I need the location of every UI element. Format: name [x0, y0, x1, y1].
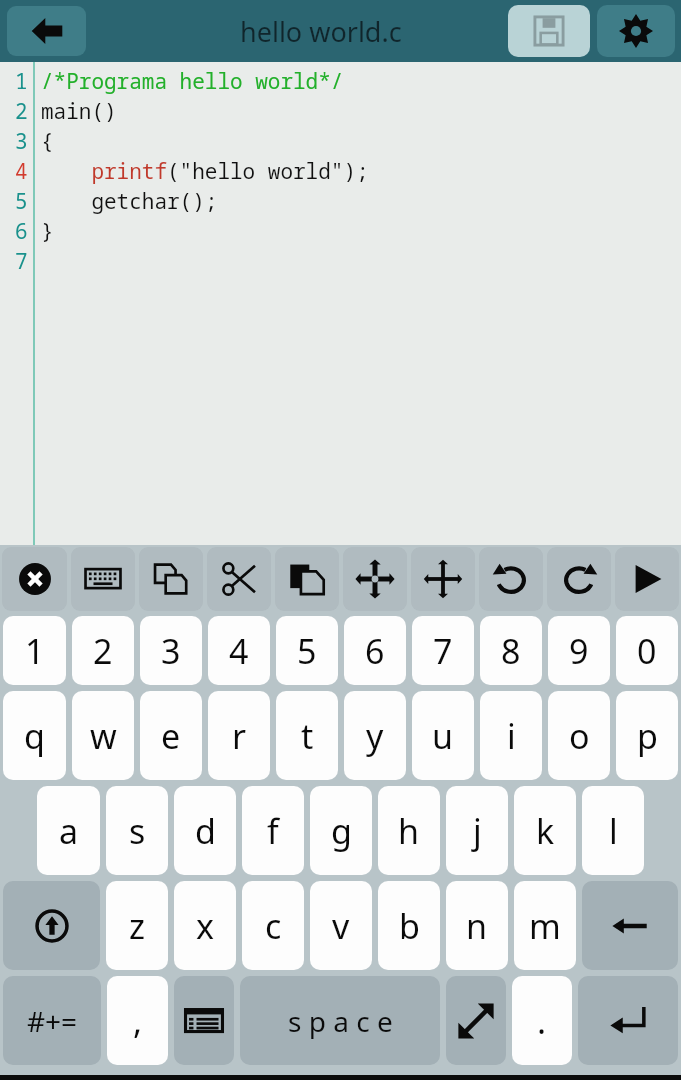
staticText: 5 — [15, 187, 28, 216]
staticText: } — [41, 217, 54, 246]
staticText: i — [507, 713, 516, 759]
staticText: r — [232, 713, 247, 759]
button[interactable]: l — [582, 786, 644, 875]
button[interactable]: g — [310, 786, 372, 875]
button[interactable]: #+= — [3, 976, 101, 1065]
staticText: x — [196, 903, 214, 949]
button[interactable]: y — [344, 691, 406, 780]
staticText: 6 — [365, 628, 385, 674]
staticText: /*Programa hello world*/ — [41, 67, 344, 96]
staticText: 3 — [161, 628, 181, 674]
button[interactable]: f — [242, 786, 304, 875]
button[interactable]: Keyboard — [71, 547, 135, 611]
staticText: g — [331, 808, 352, 854]
staticText: printf("hello world"); — [41, 157, 369, 186]
staticText: hello world.c — [240, 13, 402, 50]
button[interactable]: Select move — [343, 547, 407, 611]
button[interactable]: j — [446, 786, 508, 875]
button[interactable]: k — [514, 786, 576, 875]
button[interactable]: 9 — [548, 616, 610, 685]
staticText: z — [129, 903, 145, 949]
button[interactable]: w — [72, 691, 134, 780]
button[interactable]: Cut — [207, 547, 271, 611]
button[interactable]: 7 — [412, 616, 474, 685]
button[interactable]: m — [514, 881, 576, 970]
button[interactable]: Paste — [275, 547, 339, 611]
button[interactable]: h — [378, 786, 440, 875]
button[interactable]: 6 — [344, 616, 406, 685]
button[interactable]: Copy — [139, 547, 203, 611]
staticText: 8 — [501, 628, 521, 674]
button[interactable]: c — [242, 881, 304, 970]
button[interactable]: , — [107, 976, 168, 1065]
button[interactable]: i — [480, 691, 542, 780]
staticText: 5 — [297, 628, 317, 674]
button[interactable]: Layout — [174, 976, 234, 1065]
staticText: #+= — [27, 1002, 78, 1040]
button[interactable]: q — [3, 691, 66, 780]
button[interactable]: b — [378, 881, 440, 970]
button[interactable]: s p a c e — [240, 976, 440, 1065]
button[interactable]: v — [310, 881, 372, 970]
button[interactable]: u — [412, 691, 474, 780]
button[interactable]: t — [276, 691, 338, 780]
button[interactable]: Shift — [3, 881, 100, 970]
button[interactable]: Redo — [547, 547, 611, 611]
button[interactable]: d — [174, 786, 236, 875]
staticText: 0 — [637, 628, 657, 674]
button[interactable]: 4 — [208, 616, 270, 685]
button[interactable]: 0 — [616, 616, 678, 685]
staticText: t — [301, 713, 314, 759]
button[interactable]: 2 — [72, 616, 134, 685]
staticText: o — [569, 713, 590, 759]
staticText: 2 — [15, 97, 28, 126]
staticText: { — [41, 127, 54, 156]
button[interactable]: Undo — [479, 547, 543, 611]
button[interactable]: s — [106, 786, 168, 875]
staticText: 3 — [15, 127, 28, 156]
staticText: getchar(); — [41, 187, 218, 216]
button[interactable]: Close — [2, 547, 67, 611]
button[interactable]: 5 — [276, 616, 338, 685]
button[interactable]: a — [37, 786, 100, 875]
button[interactable]: Back — [7, 6, 86, 56]
staticText: s p a c e — [288, 1002, 393, 1040]
button[interactable]: Enter — [578, 976, 678, 1065]
button[interactable]: Resize — [446, 976, 506, 1065]
button[interactable]: o — [548, 691, 610, 780]
staticText: f — [267, 808, 279, 854]
button[interactable]: z — [106, 881, 168, 970]
button[interactable]: p — [616, 691, 678, 780]
staticText: h — [398, 808, 420, 854]
button[interactable]: 1 — [3, 616, 66, 685]
staticText: . — [537, 998, 547, 1044]
staticText: 9 — [569, 628, 589, 674]
button[interactable]: Settings — [597, 5, 675, 57]
button[interactable]: n — [446, 881, 508, 970]
button[interactable]: Save — [508, 5, 590, 57]
staticText: 4 — [15, 157, 28, 186]
staticText: y — [366, 713, 384, 759]
staticText: 7 — [15, 247, 28, 276]
staticText: e — [161, 713, 181, 759]
button[interactable]: e — [140, 691, 202, 780]
button[interactable]: Move — [411, 547, 475, 611]
staticText: k — [536, 808, 555, 854]
button[interactable]: Backspace — [582, 881, 678, 970]
button[interactable]: x — [174, 881, 236, 970]
staticText: 7 — [433, 628, 453, 674]
button[interactable]: . — [512, 976, 572, 1065]
button[interactable]: 8 — [480, 616, 542, 685]
staticText: , — [133, 998, 143, 1044]
button[interactable]: 3 — [140, 616, 202, 685]
staticText: main() — [41, 97, 117, 126]
staticText: b — [399, 903, 420, 949]
button[interactable]: Run — [615, 547, 679, 611]
staticText: 4 — [229, 628, 249, 674]
staticText: w — [90, 713, 117, 759]
staticText: 6 — [15, 217, 28, 246]
staticText: l — [609, 808, 618, 854]
staticText: m — [529, 903, 561, 949]
button[interactable]: r — [208, 691, 270, 780]
staticText: v — [332, 903, 350, 949]
